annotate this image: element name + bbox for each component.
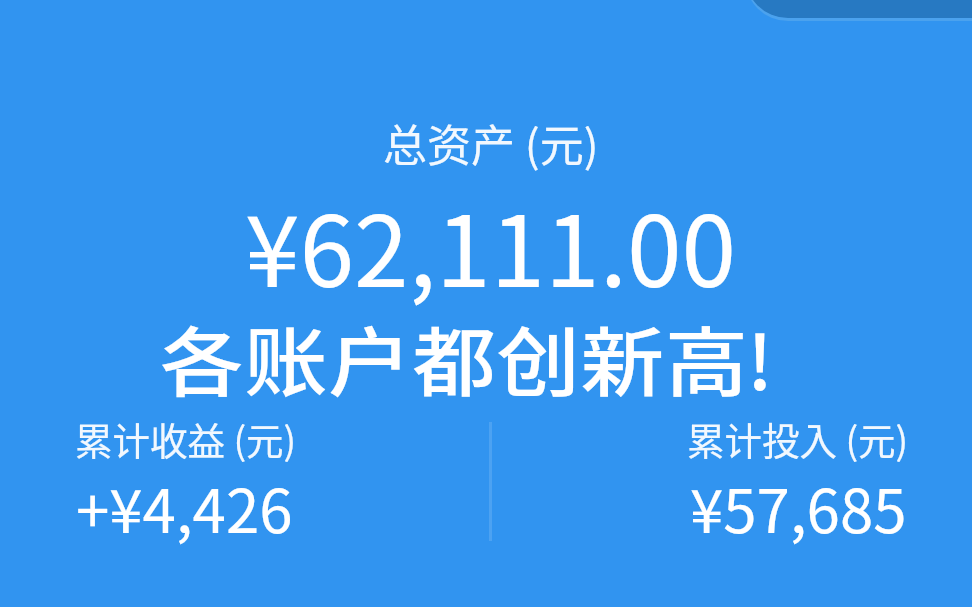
button[interactable]: 累计收益 (元) — [60, 400, 470, 548]
staticText: 总资产 (元) — [383, 111, 599, 175]
staticText: ¥57,685 — [690, 463, 907, 550]
staticText: ¥62,111.00 — [245, 173, 737, 315]
staticText: 累计收益 (元) — [75, 411, 297, 465]
button[interactable]: 累计投入 (元) — [510, 400, 922, 548]
staticText: ! — [747, 303, 773, 412]
staticText: +¥4,426 — [76, 463, 293, 550]
button[interactable]: Notification shade — [745, 0, 972, 18]
staticText: 各账户都创新高 — [160, 303, 749, 412]
staticText: 累计投入 (元) — [687, 411, 909, 465]
button[interactable]: 总资产 (元) — [180, 100, 792, 295]
